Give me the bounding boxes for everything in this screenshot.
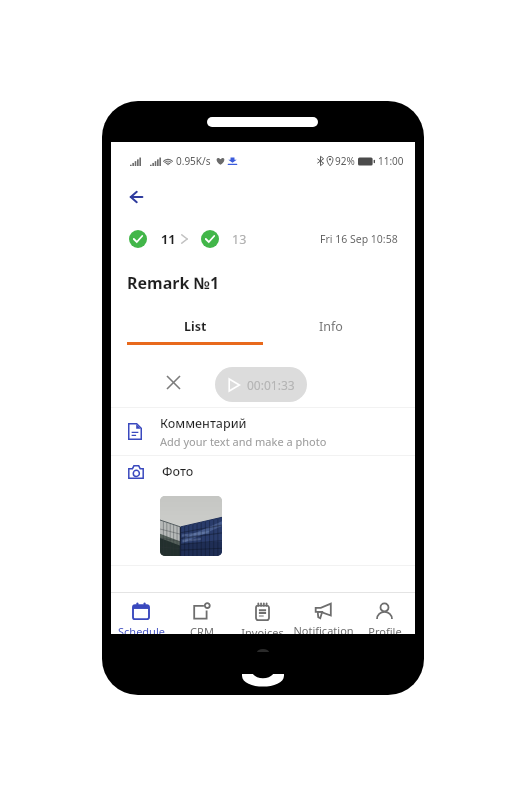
button[interactable]: Schedule: [111, 593, 171, 634]
button[interactable]: Step complete: [201, 230, 219, 248]
button[interactable]: Фото: [111, 456, 415, 565]
staticText: 0.95K/s: [176, 154, 211, 168]
staticText: Schedule: [118, 624, 165, 634]
button[interactable]: Delete recording: [159, 368, 187, 396]
staticText: List: [184, 318, 207, 335]
button[interactable]: Info: [263, 309, 399, 345]
button[interactable]: List: [127, 309, 263, 345]
staticText: Add your text and make a photo: [160, 434, 327, 449]
staticText: Info: [319, 318, 343, 335]
button[interactable]: Profile: [354, 593, 415, 634]
button[interactable]: CRM: [171, 593, 232, 634]
staticText: Invoices: [241, 625, 284, 634]
button[interactable]: Photo thumbnail: [160, 496, 222, 556]
staticText: 92%: [335, 154, 355, 168]
staticText: Remark №1: [127, 272, 220, 294]
staticText: 11:00: [378, 154, 404, 168]
button[interactable]: Invoices: [232, 593, 293, 634]
button[interactable]: 00:01:33: [215, 367, 307, 402]
button[interactable]: Комментарий: [111, 408, 415, 455]
staticText: Комментарий: [160, 415, 247, 432]
staticText: 11: [161, 231, 176, 248]
staticText: Profile: [368, 624, 402, 634]
button[interactable]: Notification: [293, 593, 354, 634]
staticText: Фото: [162, 463, 194, 480]
button[interactable]: Back: [120, 181, 152, 213]
staticText: CRM: [190, 624, 214, 634]
staticText: 13: [232, 231, 247, 248]
staticText: Notification: [293, 623, 354, 634]
staticText: Fri 16 Sep 10:58: [320, 232, 398, 246]
staticText: 00:01:33: [247, 377, 295, 393]
button[interactable]: Step complete: [129, 230, 147, 248]
